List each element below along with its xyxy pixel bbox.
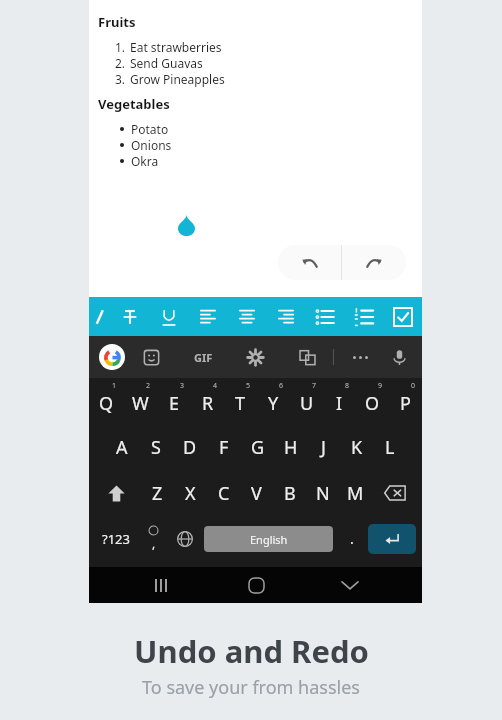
button[interactable]: Redo xyxy=(342,245,406,280)
button[interactable]: D xyxy=(173,424,207,470)
button[interactable]: 4 xyxy=(191,378,224,424)
button[interactable]: X xyxy=(174,470,207,516)
staticText: K xyxy=(351,435,363,460)
button[interactable]: Z xyxy=(140,470,174,516)
staticText: 6 xyxy=(279,381,284,391)
button[interactable]: Recents xyxy=(139,567,183,603)
button[interactable]: ?123 xyxy=(95,516,137,561)
button[interactable]: Back xyxy=(328,567,372,603)
button[interactable]: Enter xyxy=(368,524,416,554)
staticText: GIF xyxy=(194,350,213,365)
button[interactable]: Shift xyxy=(93,470,140,516)
button[interactable]: Voice input xyxy=(386,336,412,378)
button[interactable]: 6 xyxy=(257,378,290,424)
button[interactable]: Align center xyxy=(227,297,266,336)
staticText: To save your from hassles xyxy=(142,675,360,700)
staticText: Y xyxy=(268,391,279,416)
button[interactable]: 9 xyxy=(356,378,389,424)
button[interactable]: Strikethrough xyxy=(110,297,149,336)
button[interactable]: 2 xyxy=(123,378,157,424)
button[interactable]: GIF xyxy=(177,336,229,378)
button[interactable]: Checklist xyxy=(383,297,422,336)
staticText: Q xyxy=(99,391,114,416)
button[interactable]: C xyxy=(207,470,240,516)
staticText: English xyxy=(250,532,288,547)
button[interactable]: Google xyxy=(99,344,125,370)
button[interactable]: 1 xyxy=(89,378,123,424)
button[interactable]: Home xyxy=(234,567,278,603)
button[interactable]: More xyxy=(334,336,386,378)
staticText: O xyxy=(365,391,380,416)
staticText: F xyxy=(219,435,229,460)
button[interactable]: H xyxy=(274,424,307,470)
button[interactable]: Translate xyxy=(281,336,333,378)
button[interactable]: Change language xyxy=(169,516,201,561)
button[interactable]: 0 xyxy=(389,378,422,424)
button[interactable]: L xyxy=(373,424,406,470)
staticText: W xyxy=(132,391,149,416)
staticText: Onions xyxy=(131,137,172,153)
button[interactable]: K xyxy=(340,424,373,470)
staticText: 3 xyxy=(180,381,185,391)
staticText: H xyxy=(284,435,298,460)
staticText: 1. xyxy=(115,39,126,55)
staticText: 0 xyxy=(411,381,416,391)
staticText: N xyxy=(316,481,330,506)
button[interactable]: V xyxy=(240,470,273,516)
button[interactable]: Period xyxy=(336,516,368,561)
staticText: J xyxy=(321,435,326,460)
button[interactable]: Emoji and comma xyxy=(137,516,169,561)
staticText: Okra xyxy=(131,153,159,169)
staticText: R xyxy=(202,391,214,416)
staticText: X xyxy=(185,481,196,506)
staticText: Z xyxy=(152,481,163,506)
staticText: L xyxy=(385,435,395,460)
button[interactable]: Italic xyxy=(89,297,110,336)
staticText: 9 xyxy=(378,381,383,391)
button[interactable]: Backspace xyxy=(372,470,418,516)
staticText: 2 xyxy=(146,381,151,391)
staticText: 2. xyxy=(115,55,126,71)
button[interactable]: Numbered list xyxy=(344,297,383,336)
button[interactable]: N xyxy=(306,470,339,516)
staticText: Fruits xyxy=(98,13,136,31)
button[interactable]: J xyxy=(307,424,340,470)
button[interactable]: 8 xyxy=(323,378,356,424)
staticText: Send Guavas xyxy=(130,55,203,71)
staticText: Vegetables xyxy=(98,95,170,113)
button[interactable]: Undo xyxy=(278,245,341,280)
button[interactable]: 5 xyxy=(224,378,257,424)
button[interactable]: S xyxy=(139,424,173,470)
staticText: Grow Pineapples xyxy=(130,71,225,87)
button[interactable]: F xyxy=(207,424,241,470)
staticText: G xyxy=(251,435,265,460)
button[interactable]: Align left xyxy=(188,297,227,336)
button[interactable]: Align right xyxy=(266,297,305,336)
staticText: M xyxy=(347,481,364,506)
staticText: C xyxy=(218,481,230,506)
staticText: 1 xyxy=(112,381,117,391)
button[interactable]: Bulleted list xyxy=(305,297,344,336)
button[interactable]: G xyxy=(241,424,274,470)
staticText: E xyxy=(169,391,180,416)
staticText: V xyxy=(251,481,262,506)
staticText: , xyxy=(152,535,156,551)
staticText: 8 xyxy=(345,381,350,391)
staticText: I xyxy=(336,391,343,416)
button[interactable]: M xyxy=(339,470,372,516)
button[interactable]: Stickers xyxy=(125,336,177,378)
staticText: ?123 xyxy=(102,530,130,548)
button[interactable]: A xyxy=(105,424,139,470)
button[interactable]: B xyxy=(273,470,306,516)
staticText: Potato xyxy=(131,121,169,137)
button[interactable]: Settings xyxy=(229,336,281,378)
button[interactable]: 3 xyxy=(157,378,191,424)
staticText: Eat strawberries xyxy=(130,39,222,55)
button[interactable]: 7 xyxy=(290,378,323,424)
button[interactable]: English xyxy=(204,526,333,552)
staticText: 7 xyxy=(312,381,317,391)
staticText: U xyxy=(300,391,314,416)
staticText: 3. xyxy=(115,71,126,87)
staticText: . xyxy=(350,529,354,548)
button[interactable]: Underline xyxy=(149,297,188,336)
